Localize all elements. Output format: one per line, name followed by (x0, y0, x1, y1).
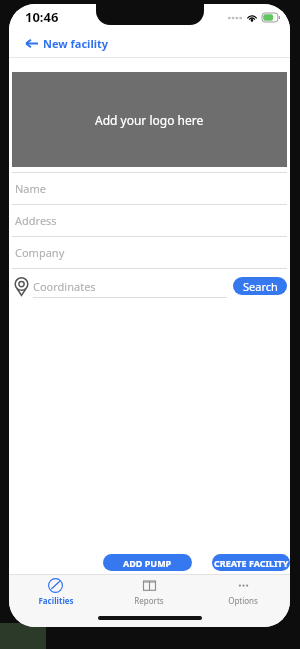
button[interactable]: ADD PUMP (103, 554, 192, 571)
staticText: Search (243, 279, 278, 294)
button[interactable]: Reports (102, 575, 196, 609)
button[interactable]: New facility (9, 30, 290, 57)
staticText: Company (15, 245, 65, 260)
button[interactable]: Search (233, 277, 287, 295)
staticText: Add your logo here (95, 112, 204, 128)
staticText: CREATE FACILITY (214, 557, 289, 569)
staticText: Reports (134, 595, 164, 606)
staticText: Options (228, 595, 258, 606)
staticText: ADD PUMP (123, 557, 172, 569)
staticText: Name (15, 181, 47, 196)
button[interactable]: Company (9, 237, 290, 268)
button[interactable]: Facilities (9, 575, 102, 609)
staticText: New facility (43, 36, 108, 51)
button[interactable]: Name (9, 173, 290, 204)
other: Location (14, 277, 29, 296)
button[interactable]: Add your logo here (12, 72, 287, 167)
button[interactable]: Coordinates (33, 275, 227, 297)
staticText: 10:46 (25, 8, 59, 26)
button[interactable]: Address (9, 205, 290, 236)
staticText: Coordinates (33, 279, 96, 294)
staticText: Facilities (38, 595, 74, 606)
staticText: Address (15, 213, 57, 228)
button[interactable]: Options (196, 575, 290, 609)
button[interactable]: CREATE FACILITY (212, 554, 290, 571)
